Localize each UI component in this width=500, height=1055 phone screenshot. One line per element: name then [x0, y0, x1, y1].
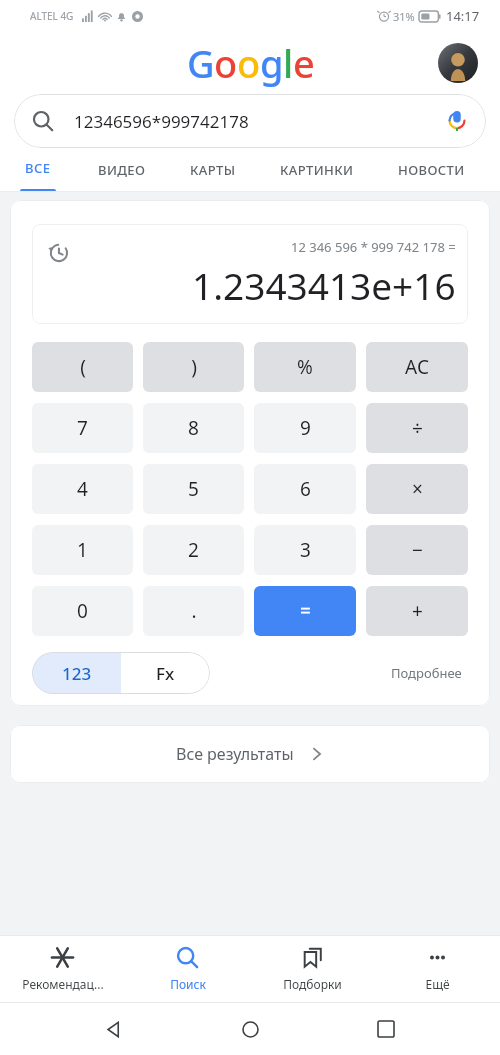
staticText: Все результаты	[176, 743, 294, 765]
staticText: 12346596*999742178	[74, 110, 446, 133]
staticText: ALTEL 4G	[30, 9, 74, 23]
staticText: ÷	[412, 415, 423, 441]
button[interactable]: 0	[32, 586, 133, 636]
button[interactable]: ВСЕ	[20, 148, 56, 192]
button[interactable]: ÷	[366, 403, 468, 453]
staticText: o	[237, 37, 260, 89]
staticText: +	[412, 598, 423, 624]
staticText: Fx	[156, 662, 175, 685]
button[interactable]: Home	[228, 1007, 272, 1051]
button[interactable]: ×	[366, 464, 468, 514]
staticText: ВИДЕО	[98, 161, 146, 179]
button[interactable]: 123	[32, 652, 121, 694]
staticText: Ещё	[425, 976, 450, 992]
staticText: −	[412, 537, 423, 563]
staticText: НОВОСТИ	[398, 161, 465, 179]
button[interactable]: Account	[438, 43, 478, 83]
staticText: Подробнее	[391, 664, 462, 682]
button[interactable]: 1	[32, 525, 133, 575]
button[interactable]: 7	[32, 403, 133, 453]
button[interactable]: Подробнее	[385, 658, 468, 688]
button[interactable]: Back	[92, 1007, 136, 1051]
button[interactable]: 2	[143, 525, 244, 575]
button[interactable]: =	[254, 586, 356, 636]
button[interactable]: 8	[143, 403, 244, 453]
staticText: g	[260, 37, 283, 89]
button[interactable]: Ещё	[375, 936, 500, 1002]
staticText: ВСЕ	[25, 159, 51, 177]
staticText: 123	[62, 662, 92, 685]
staticText: 31%	[393, 9, 415, 24]
other: Voice search	[446, 110, 468, 132]
staticText: .	[191, 598, 197, 624]
staticText: 2	[188, 537, 199, 563]
button[interactable]: Все результаты	[10, 725, 490, 783]
button[interactable]: 9	[254, 403, 356, 453]
button[interactable]: (	[32, 342, 133, 392]
staticText: 3	[300, 537, 311, 563]
button[interactable]: КАРТИНКИ	[280, 148, 354, 192]
staticText: )	[191, 354, 197, 380]
staticText: AC	[405, 354, 429, 380]
button[interactable]: КАРТЫ	[190, 148, 236, 192]
button[interactable]: Recents	[364, 1007, 408, 1051]
staticText: =	[300, 598, 311, 624]
staticText: Поиск	[170, 976, 206, 992]
staticText: 5	[188, 476, 199, 502]
staticText: 6	[300, 476, 311, 502]
staticText: 7	[77, 415, 88, 441]
button[interactable]: )	[143, 342, 244, 392]
button[interactable]: Поиск	[125, 936, 250, 1002]
staticText: (	[80, 354, 86, 380]
button[interactable]: History	[46, 240, 70, 264]
button[interactable]: .	[143, 586, 244, 636]
staticText: ×	[412, 476, 423, 502]
staticText: КАРТИНКИ	[280, 161, 354, 179]
staticText: 8	[188, 415, 199, 441]
button[interactable]: AC	[366, 342, 468, 392]
staticText: 9	[300, 415, 311, 441]
button[interactable]: 5	[143, 464, 244, 514]
button[interactable]: 3	[254, 525, 356, 575]
staticText: Подборки	[283, 976, 342, 992]
button[interactable]: ВИДЕО	[98, 148, 146, 192]
button[interactable]: Рекомендац...	[0, 936, 125, 1002]
button[interactable]: Подборки	[250, 936, 375, 1002]
staticText: e	[293, 37, 314, 89]
staticText: 12 346 596 * 999 742 178 =	[291, 238, 456, 256]
staticText: o	[214, 37, 237, 89]
button[interactable]: 6	[254, 464, 356, 514]
staticText: 0	[77, 598, 88, 624]
button[interactable]: НОВОСТИ	[398, 148, 465, 192]
button[interactable]: Fx	[121, 652, 210, 694]
button[interactable]: +	[366, 586, 468, 636]
staticText: 1.2343413e+16	[192, 260, 456, 310]
staticText: G	[187, 37, 214, 89]
staticText: 1	[77, 537, 88, 563]
staticText: 14:17	[446, 7, 480, 25]
button[interactable]: 12346596*999742178	[14, 94, 486, 148]
button[interactable]: −	[366, 525, 468, 575]
button[interactable]: 4	[32, 464, 133, 514]
button[interactable]: %	[254, 342, 356, 392]
staticText: l	[283, 37, 293, 89]
staticText: КАРТЫ	[190, 161, 236, 179]
staticText: %	[297, 354, 313, 380]
staticText: Рекомендац...	[22, 976, 104, 992]
staticText: 4	[77, 476, 88, 502]
